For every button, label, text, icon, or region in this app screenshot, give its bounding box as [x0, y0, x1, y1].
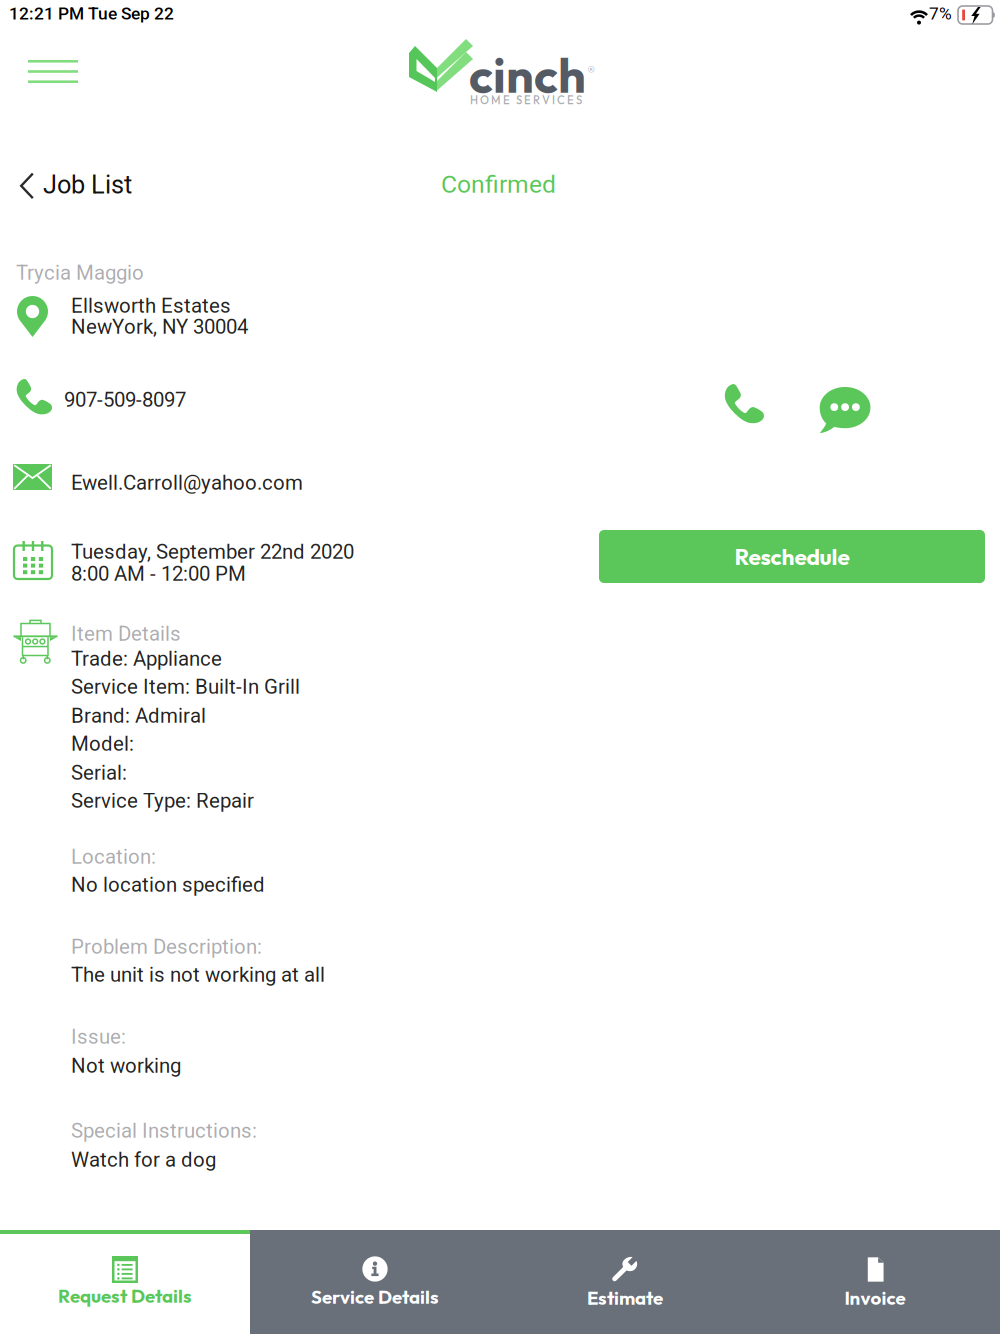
staticText: The unit is not working at all	[71, 963, 325, 987]
button[interactable]: Job List	[12, 164, 140, 208]
staticText: cinch	[469, 44, 586, 105]
staticText: H O M E S E R V I C E S	[470, 93, 582, 107]
staticText: Special Instructions:	[71, 1119, 257, 1143]
staticText: Job List	[43, 170, 132, 200]
staticText: Request Details	[58, 1284, 192, 1307]
button[interactable]: Ewell.Carroll@yahoo.com	[71, 471, 303, 495]
staticText: Issue:	[71, 1025, 126, 1049]
staticText: ®	[587, 62, 595, 80]
staticText: Reschedule	[734, 542, 849, 571]
button[interactable]: Estimate	[500, 1230, 750, 1334]
staticText: Watch for a dog	[71, 1148, 216, 1172]
staticText: 8:00 AM - 12:00 PM	[71, 562, 246, 586]
button[interactable]: Menu	[18, 50, 88, 93]
staticText: No location specified	[71, 873, 265, 897]
staticText: Tuesday, September 22nd 2020	[71, 540, 354, 564]
staticText: NewYork, NY 30004	[71, 315, 248, 339]
staticText: 907-509-8097	[64, 388, 186, 412]
button[interactable]: Invoice	[750, 1230, 1000, 1334]
button[interactable]: Request Details	[0, 1230, 250, 1334]
button[interactable]: Reschedule	[599, 530, 985, 583]
staticText: Ewell.Carroll@yahoo.com	[71, 471, 303, 495]
staticText: Invoice	[844, 1286, 905, 1309]
staticText: Service Details	[311, 1285, 439, 1308]
staticText: Serial:	[71, 761, 127, 785]
button[interactable]: 907-509-8097	[64, 388, 186, 412]
staticText: Confirmed	[441, 170, 556, 199]
staticText: Model:	[71, 732, 134, 756]
staticText: Problem Description:	[71, 935, 262, 959]
staticText: Trade: Appliance	[71, 647, 222, 671]
staticText: Tue Sep 22	[88, 3, 174, 24]
button[interactable]: Service Details	[250, 1230, 500, 1334]
staticText: Location:	[71, 845, 156, 869]
staticText: 12:21 PM	[9, 3, 84, 24]
staticText: Item Details	[71, 622, 181, 646]
button[interactable]: Message	[810, 379, 878, 441]
staticText: Service Type: Repair	[71, 789, 254, 813]
staticText: Estimate	[587, 1286, 663, 1309]
staticText: Service Item: Built-In Grill	[71, 675, 300, 699]
staticText: Ellsworth Estates	[71, 294, 231, 318]
staticText: Not working	[71, 1054, 181, 1078]
staticText: 7%	[929, 3, 952, 24]
staticText: Brand: Admiral	[71, 704, 206, 728]
button[interactable]: Call	[716, 376, 772, 432]
staticText: Trycia Maggio	[16, 261, 144, 285]
